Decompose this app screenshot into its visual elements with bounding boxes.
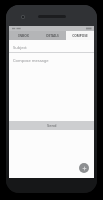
staticText: DETAILS [46,34,59,38]
button[interactable]: INBOX [9,31,38,40]
button[interactable]: Compose message [9,57,94,121]
button[interactable]: DETAILS [38,31,66,40]
button[interactable]: Send [9,121,94,130]
button[interactable]: Subject [9,43,94,52]
staticText: Subject [13,45,27,50]
button[interactable]: COMPOSE [66,31,94,40]
staticText: Compose message [13,58,49,63]
staticText: COMPOSE [72,34,88,38]
button[interactable]: New message [79,163,89,173]
staticText: INBOX [18,34,29,38]
staticText: Send [47,123,57,128]
